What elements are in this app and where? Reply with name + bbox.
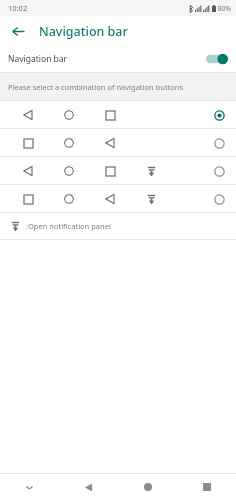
button[interactable]: Back [59,474,118,500]
staticText: 80% [218,4,231,13]
staticText: Please select a combination of navigatio… [8,82,184,92]
button[interactable] [0,101,236,128]
staticText: Navigation bar [8,53,68,65]
staticText: :Open notification panel [26,221,111,231]
button[interactable]: Hide keyboard [0,474,59,500]
button[interactable] [0,185,236,212]
staticText: Navigation bar [39,23,128,40]
button[interactable] [0,157,236,184]
staticText: 10:02 [8,3,28,13]
button[interactable]: Home [118,474,177,500]
button[interactable] [0,129,236,156]
button[interactable]: Navigation bar [0,46,236,72]
button[interactable]: Back [7,20,29,42]
button[interactable]: Recent apps [177,474,236,500]
